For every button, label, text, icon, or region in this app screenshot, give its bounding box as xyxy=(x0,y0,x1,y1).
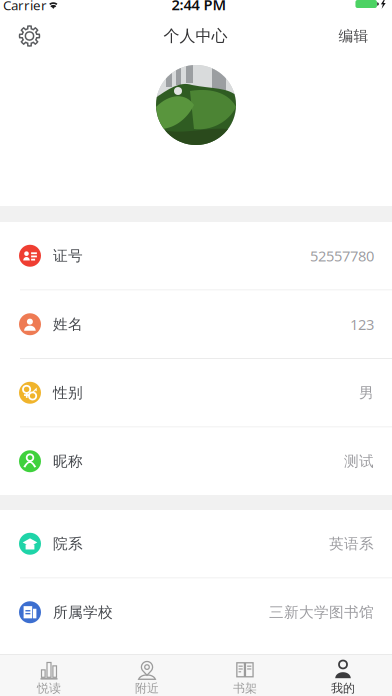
staticText: 52557780 xyxy=(310,246,374,265)
staticText: 测试 xyxy=(344,452,374,470)
staticText: 编辑 xyxy=(338,27,368,45)
button[interactable]: 院系 xyxy=(0,510,392,577)
staticText: 姓名 xyxy=(53,315,83,333)
staticText: Carrier xyxy=(3,0,47,14)
staticText: 性别 xyxy=(53,384,83,402)
staticText: 个人中心 xyxy=(163,26,227,46)
staticText: 123 xyxy=(350,314,374,334)
staticText: 附近 xyxy=(135,681,159,696)
staticText: 院系 xyxy=(53,535,83,553)
staticText: 昵称 xyxy=(53,452,83,470)
button[interactable]: 昵称 xyxy=(0,427,392,495)
staticText: 证号 xyxy=(53,247,83,265)
button[interactable]: 证号 xyxy=(0,222,392,289)
staticText: 男 xyxy=(359,384,374,402)
button[interactable]: 姓名 xyxy=(0,290,392,358)
button[interactable]: 附近 xyxy=(98,654,196,696)
staticText: 我的 xyxy=(331,681,355,696)
button[interactable]: 编辑 xyxy=(326,16,380,56)
button[interactable]: 悦读 xyxy=(0,654,98,696)
staticText: 三新大学图书馆 xyxy=(269,603,374,621)
button[interactable]: 我的 xyxy=(294,654,392,696)
button[interactable]: Profile photo xyxy=(156,65,236,145)
staticText: 书架 xyxy=(233,681,257,696)
button[interactable]: 书架 xyxy=(196,654,294,696)
button[interactable]: 性别 xyxy=(0,359,392,426)
button[interactable]: Settings xyxy=(7,16,51,56)
staticText: 英语系 xyxy=(329,535,374,553)
staticText: 所属学校 xyxy=(53,603,113,621)
staticText: 2:44 PM xyxy=(171,0,226,14)
button[interactable]: 所属学校 xyxy=(0,578,392,646)
staticText: 悦读 xyxy=(37,681,61,696)
